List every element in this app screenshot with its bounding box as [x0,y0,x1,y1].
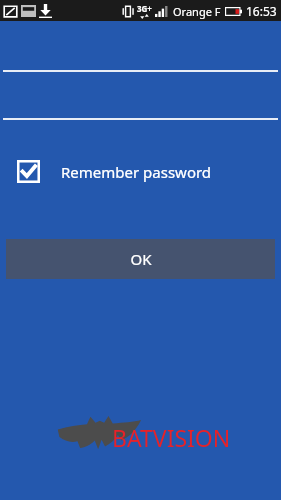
staticText: 16:53 [246,3,277,19]
staticText: BATVISION [112,422,231,453]
staticText: OK [130,249,152,269]
button[interactable]: OK [6,239,275,279]
staticText: 3G+ [137,3,152,14]
staticText: Orange F [173,4,221,19]
other: Remember password checkbox [17,160,40,183]
staticText: Remember password [61,162,212,182]
button[interactable]: Remember password checkbox [17,160,265,183]
